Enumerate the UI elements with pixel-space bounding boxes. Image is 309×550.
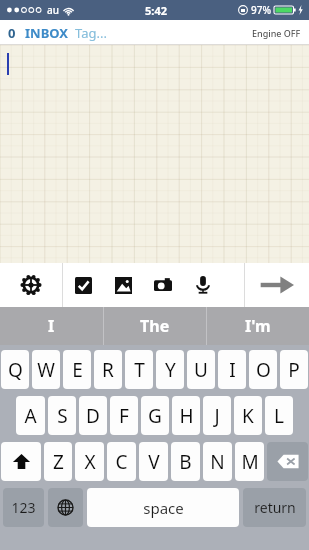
staticText: B	[179, 449, 192, 475]
button[interactable]: INBOX	[25, 24, 69, 42]
staticText: Engine OFF	[252, 27, 301, 39]
staticText: A	[24, 403, 37, 429]
button[interactable]: A	[16, 396, 45, 435]
button[interactable]: S	[48, 396, 76, 435]
staticText: I	[48, 315, 55, 337]
button[interactable]: 123	[3, 488, 44, 527]
button[interactable]: Switch keyboard	[48, 488, 83, 527]
button[interactable]: K	[234, 396, 262, 435]
staticText: Y	[165, 357, 176, 383]
staticText: Q	[8, 357, 23, 383]
staticText: W	[37, 357, 55, 383]
staticText: L	[274, 403, 284, 429]
staticText: INBOX	[25, 24, 69, 42]
button[interactable]: The	[104, 307, 206, 345]
button[interactable]: J	[203, 396, 231, 435]
button[interactable]: I'm	[207, 307, 309, 345]
button[interactable]: space	[87, 488, 239, 527]
button[interactable]: W	[32, 350, 60, 389]
staticText: T	[134, 357, 145, 383]
button[interactable]: Camera	[143, 263, 183, 307]
staticText: D	[86, 403, 100, 429]
staticText: space	[143, 498, 184, 518]
staticText: U	[194, 357, 208, 383]
button[interactable]: O	[249, 350, 277, 389]
button[interactable]: I	[218, 350, 246, 389]
staticText: au	[47, 3, 59, 17]
button[interactable]: H	[172, 396, 200, 435]
staticText: Z	[53, 449, 64, 475]
staticText: J	[214, 403, 220, 429]
staticText: I'm	[245, 315, 271, 337]
button[interactable]: Voice input	[183, 263, 223, 307]
staticText: F	[119, 403, 129, 429]
staticText: N	[210, 449, 225, 475]
button[interactable]: Q	[1, 350, 29, 389]
button[interactable]: L	[265, 396, 293, 435]
button[interactable]: M	[235, 442, 264, 481]
button[interactable]: Insert image	[103, 263, 143, 307]
staticText: P	[288, 357, 300, 383]
staticText: 5:42	[145, 3, 167, 18]
staticText: C	[115, 449, 128, 475]
button[interactable]: P	[280, 350, 308, 389]
button[interactable]: Settings	[0, 263, 62, 307]
button[interactable]: F	[110, 396, 138, 435]
staticText: R	[102, 357, 114, 383]
button[interactable]: I	[0, 307, 103, 345]
staticText: I	[229, 357, 236, 383]
button[interactable]: Backspace	[267, 442, 308, 481]
staticText: E	[72, 357, 83, 383]
staticText: K	[242, 403, 254, 429]
staticText: O	[256, 357, 271, 383]
staticText: H	[179, 403, 194, 429]
button[interactable]: Checklist	[63, 263, 103, 307]
button[interactable]: D	[79, 396, 107, 435]
button[interactable]: Shift	[1, 442, 41, 481]
staticText: 97%	[251, 3, 271, 17]
button[interactable]: G	[141, 396, 169, 435]
button[interactable]: return	[243, 488, 306, 527]
button[interactable]: Engine OFF	[252, 27, 301, 39]
button[interactable]: R	[94, 350, 122, 389]
button[interactable]: B	[171, 442, 200, 481]
staticText: The	[140, 315, 170, 337]
staticText: Tag...	[75, 24, 107, 42]
staticText: 0	[8, 24, 16, 42]
button[interactable]: X	[75, 442, 104, 481]
button[interactable]: Tag...	[75, 24, 107, 42]
button[interactable]: T	[125, 350, 153, 389]
button[interactable]: U	[187, 350, 215, 389]
staticText: V	[148, 449, 160, 475]
button[interactable]: V	[139, 442, 168, 481]
staticText: G	[148, 403, 162, 429]
staticText: 123	[11, 498, 36, 517]
button[interactable]: Y	[156, 350, 184, 389]
button[interactable]: Z	[44, 442, 72, 481]
staticText: return	[254, 498, 296, 517]
button[interactable]: E	[63, 350, 91, 389]
button[interactable]: Send	[244, 263, 309, 307]
button[interactable]: C	[107, 442, 136, 481]
staticText: X	[84, 449, 96, 475]
staticText: S	[57, 403, 68, 429]
button[interactable]: N	[203, 442, 232, 481]
staticText: M	[241, 449, 259, 475]
